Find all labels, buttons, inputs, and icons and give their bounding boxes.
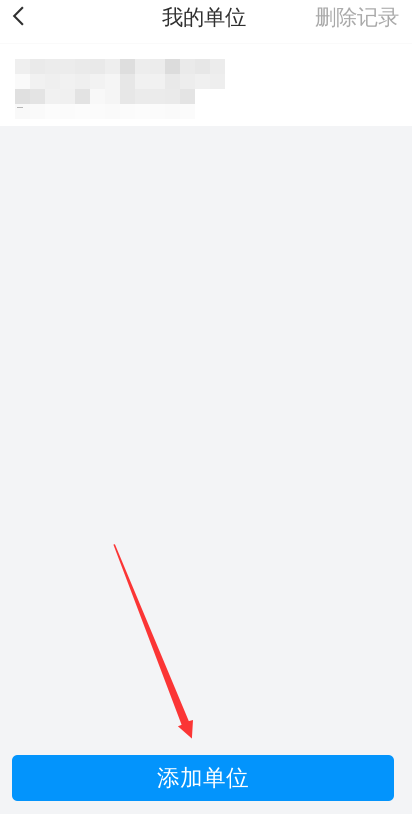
button[interactable]: 添加单位 [12,755,394,801]
staticText: 我的单位 [162,4,246,31]
staticText: 删除记录 [315,4,399,31]
button[interactable]: Back [0,0,44,35]
staticText: 添加单位 [157,764,249,792]
button[interactable]: 删除记录 [302,0,412,35]
